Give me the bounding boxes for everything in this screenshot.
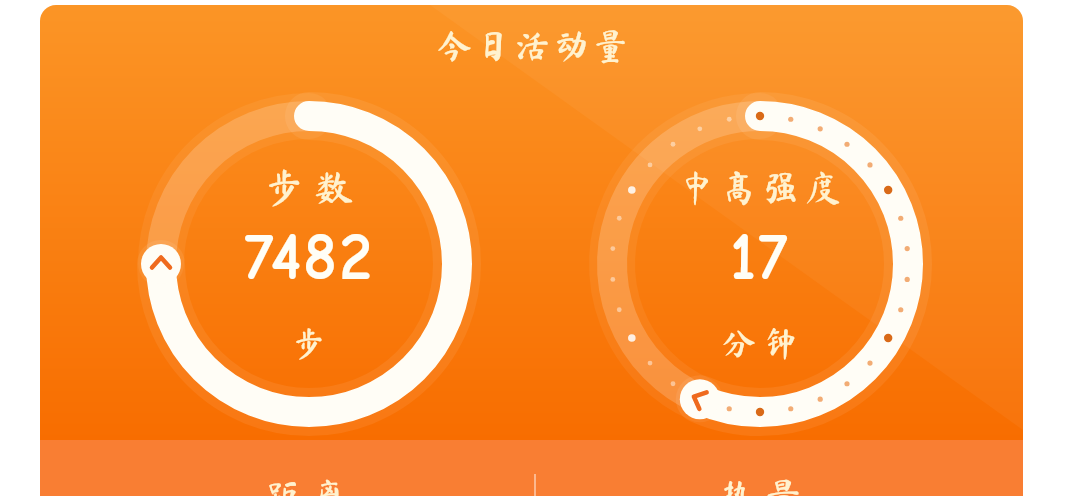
staticText: 分钟 xyxy=(722,326,806,360)
staticText: 热量 xyxy=(718,478,811,496)
staticText: 步数 xyxy=(264,167,364,207)
staticText: 距离 xyxy=(265,478,358,496)
staticText: 中高强度 xyxy=(679,169,848,205)
button[interactable] xyxy=(40,440,534,496)
staticText: 今日活动量 xyxy=(437,28,633,63)
staticText: 步 xyxy=(292,326,326,360)
button[interactable] xyxy=(146,101,472,427)
staticText: 7482 xyxy=(244,220,375,296)
staticText: 17 xyxy=(730,220,790,296)
button[interactable] xyxy=(535,440,1023,496)
button[interactable] xyxy=(597,101,923,427)
